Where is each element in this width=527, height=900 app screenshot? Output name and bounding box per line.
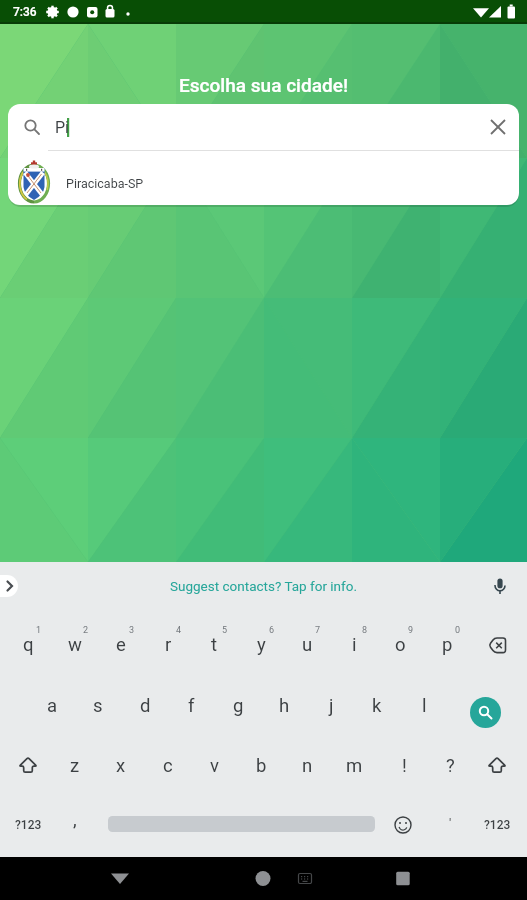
button[interactable]: !: [381, 738, 427, 794]
button[interactable]: [480, 109, 516, 145]
staticText: 7:36: [13, 5, 37, 19]
staticText: Escolha sua cidade!: [179, 74, 349, 96]
button[interactable]: ,: [52, 792, 98, 848]
staticText: y: [257, 634, 266, 656]
button[interactable]: ?123: [12, 815, 44, 835]
button[interactable]: r: [145, 617, 191, 673]
button[interactable]: ?123: [481, 815, 513, 835]
button[interactable]: [488, 574, 512, 598]
button[interactable]: b: [238, 738, 284, 794]
staticText: 3: [129, 625, 135, 636]
staticText: k: [372, 695, 382, 717]
button[interactable]: Pi: [8, 104, 519, 150]
staticText: l: [422, 695, 427, 717]
staticText: e: [116, 634, 126, 656]
staticText: ?123: [484, 818, 511, 832]
staticText: m: [346, 755, 363, 777]
staticText: v: [210, 755, 219, 777]
staticText: 1: [36, 625, 42, 636]
button[interactable]: k: [354, 678, 400, 734]
button[interactable]: [99, 857, 141, 900]
button[interactable]: q: [5, 617, 51, 673]
staticText: j: [329, 695, 334, 717]
button[interactable]: p: [424, 617, 470, 673]
button[interactable]: d: [122, 678, 168, 734]
button[interactable]: [391, 813, 415, 837]
button[interactable]: l: [401, 678, 447, 734]
staticText: 8: [362, 625, 368, 636]
button[interactable]: x: [98, 738, 144, 794]
staticText: g: [233, 695, 244, 717]
staticText: s: [93, 695, 103, 717]
staticText: x: [116, 755, 126, 777]
staticText: 5: [222, 625, 228, 636]
button[interactable]: ': [442, 813, 458, 833]
staticText: r: [165, 634, 172, 656]
staticText: w: [68, 634, 82, 656]
staticText: ?: [446, 755, 455, 777]
staticText: ': [449, 816, 452, 831]
button[interactable]: t: [191, 617, 237, 673]
button[interactable]: [242, 857, 284, 900]
staticText: Pi: [55, 118, 69, 137]
button[interactable]: v: [191, 738, 237, 794]
button[interactable]: c: [145, 738, 191, 794]
button[interactable]: [382, 857, 424, 900]
staticText: i: [352, 634, 357, 656]
button[interactable]: n: [284, 738, 330, 794]
button[interactable]: i: [331, 617, 377, 673]
button[interactable]: u: [284, 617, 330, 673]
button[interactable]: m: [331, 738, 377, 794]
button[interactable]: o: [377, 617, 423, 673]
staticText: ,: [73, 809, 77, 831]
button[interactable]: [473, 617, 519, 673]
button[interactable]: w: [52, 617, 98, 673]
staticText: u: [302, 634, 313, 656]
button[interactable]: Suggest contacts? Tap for info.: [0, 562, 527, 610]
staticText: ?123: [15, 818, 42, 832]
button[interactable]: [5, 738, 51, 794]
button[interactable]: z: [52, 738, 98, 794]
button[interactable]: s: [75, 678, 121, 734]
staticText: h: [279, 695, 290, 717]
button[interactable]: [293, 857, 317, 900]
staticText: 2: [83, 625, 89, 636]
button[interactable]: f: [168, 678, 214, 734]
button[interactable]: [0, 575, 18, 597]
button[interactable]: [462, 684, 508, 740]
staticText: c: [163, 755, 173, 777]
staticText: 6: [269, 625, 275, 636]
staticText: f: [188, 695, 195, 717]
staticText: a: [47, 695, 58, 717]
button[interactable]: g: [215, 678, 261, 734]
button[interactable]: h: [261, 678, 307, 734]
staticText: Piracicaba-SP: [66, 176, 144, 191]
staticText: o: [395, 634, 406, 656]
button[interactable]: [474, 738, 520, 794]
staticText: t: [211, 634, 218, 656]
button[interactable]: y: [238, 617, 284, 673]
staticText: d: [140, 695, 151, 717]
staticText: 4: [176, 625, 182, 636]
staticText: z: [70, 755, 80, 777]
staticText: 7: [315, 625, 321, 636]
button[interactable]: Piracicaba-SP: [8, 150, 519, 205]
staticText: Suggest contacts? Tap for info.: [170, 578, 357, 594]
button[interactable]: ?: [427, 738, 473, 794]
button[interactable]: e: [98, 617, 144, 673]
staticText: !: [402, 755, 407, 777]
staticText: 9: [408, 625, 414, 636]
staticText: q: [23, 634, 34, 656]
button[interactable]: j: [308, 678, 354, 734]
staticText: 0: [455, 625, 461, 636]
staticText: p: [442, 634, 453, 656]
button[interactable]: a: [29, 678, 75, 734]
staticText: b: [256, 755, 267, 777]
staticText: n: [302, 755, 313, 777]
